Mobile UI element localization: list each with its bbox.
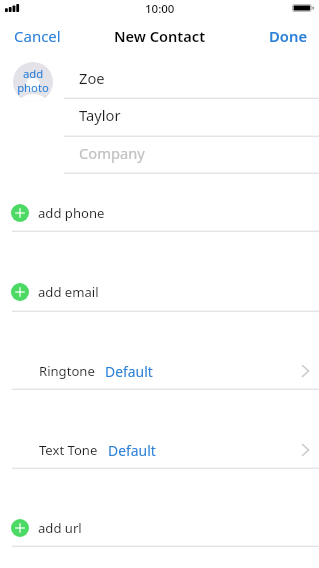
button[interactable]: Ringtone [0,352,319,390]
staticText: 10:00 [145,1,175,17]
button[interactable]: Add photo [13,62,53,102]
staticText: add url [38,519,82,537]
button[interactable]: Company [64,136,319,174]
staticText: New Contact [114,26,206,46]
button[interactable]: Cancel [6,22,69,50]
button[interactable]: Zoe [64,61,319,99]
button[interactable]: add email [0,273,319,311]
button[interactable]: add phone [0,194,319,232]
staticText: add photo [17,66,49,95]
staticText: Default [105,362,153,381]
staticText: Zoe [79,68,105,88]
staticText: Ringtone [39,362,95,380]
staticText: Cancel [14,26,61,46]
button[interactable]: Text Tone [0,431,319,469]
button[interactable]: Taylor [64,98,319,136]
staticText: Taylor [79,105,121,125]
button[interactable]: add url [0,509,319,547]
staticText: Company [79,143,145,163]
staticText: add email [38,283,99,301]
staticText: Text Tone [39,441,98,459]
button[interactable]: Done [261,22,316,50]
staticText: add phone [38,204,105,222]
staticText: Default [108,441,156,460]
staticText: Done [269,26,308,46]
